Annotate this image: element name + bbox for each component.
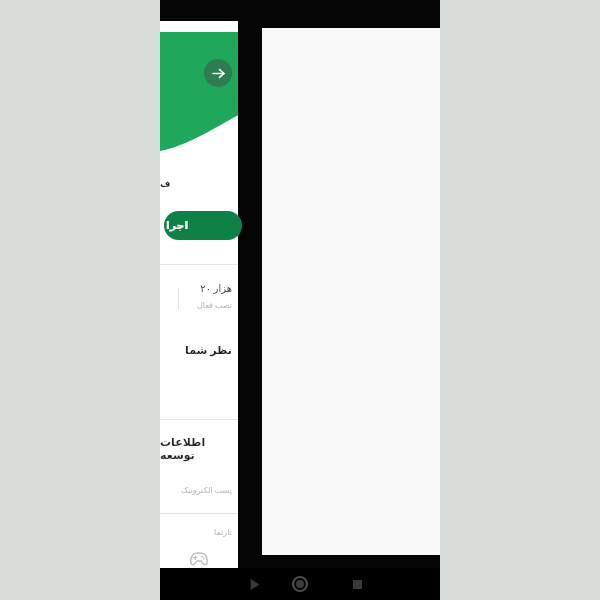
staticText: نصب فعال xyxy=(196,299,232,310)
staticText: اجرا xyxy=(166,219,189,232)
staticText: ف xyxy=(160,179,171,189)
button[interactable]: پست الکترونیک xyxy=(160,484,232,495)
staticText: تارنما xyxy=(214,528,232,537)
staticText: اطلاعات توسعه xyxy=(160,434,238,462)
button[interactable]: Home xyxy=(284,568,316,600)
button[interactable]: Recent apps xyxy=(341,568,373,600)
button[interactable]: اجرا xyxy=(164,211,242,240)
button[interactable]: Forward xyxy=(204,59,232,87)
button[interactable]: Back xyxy=(238,568,270,600)
staticText: ۲۰ هزار xyxy=(200,281,232,295)
staticText: نظر شما xyxy=(185,342,232,357)
button[interactable]: تارنما xyxy=(160,528,232,537)
button[interactable]: بازی xyxy=(160,547,238,577)
staticText: پست الکترونیک xyxy=(181,484,232,495)
